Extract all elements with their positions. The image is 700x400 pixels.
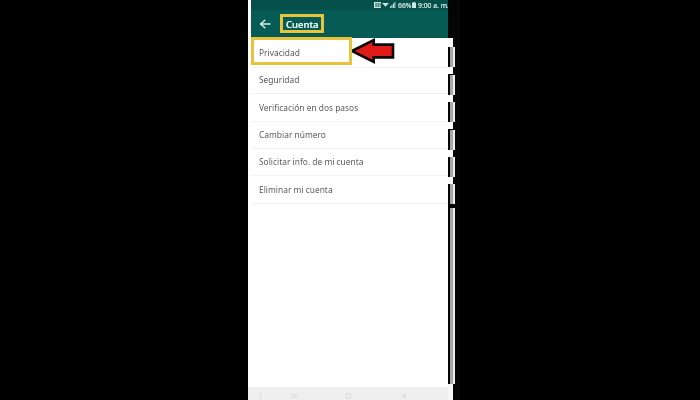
button[interactable]: Home [342, 392, 354, 400]
button[interactable]: Back [397, 392, 409, 400]
staticText: Privacidad [259, 47, 300, 58]
button[interactable]: Menu [254, 392, 266, 400]
staticText: Eliminar mi cuenta [259, 184, 333, 195]
staticText: Cuenta [286, 18, 319, 31]
button[interactable]: Eliminar mi cuenta [251, 177, 449, 204]
button[interactable]: Recents [288, 392, 300, 400]
staticText: 9:00 a. m. [418, 1, 449, 10]
staticText: Solicitar info. de mi cuenta [259, 156, 364, 167]
button[interactable]: Verificación en dos pasos [251, 95, 449, 122]
button[interactable]: Seguridad [251, 67, 449, 94]
button[interactable]: Solicitar info. de mi cuenta [251, 149, 449, 176]
staticText: Verificación en dos pasos [259, 102, 359, 113]
staticText: Cambiar número [259, 129, 326, 140]
button[interactable]: Back [256, 16, 274, 32]
button[interactable]: Privacidad [251, 38, 449, 68]
staticText: 66% [398, 1, 412, 10]
button[interactable]: Cambiar número [251, 122, 449, 149]
staticText: Seguridad [259, 74, 300, 85]
